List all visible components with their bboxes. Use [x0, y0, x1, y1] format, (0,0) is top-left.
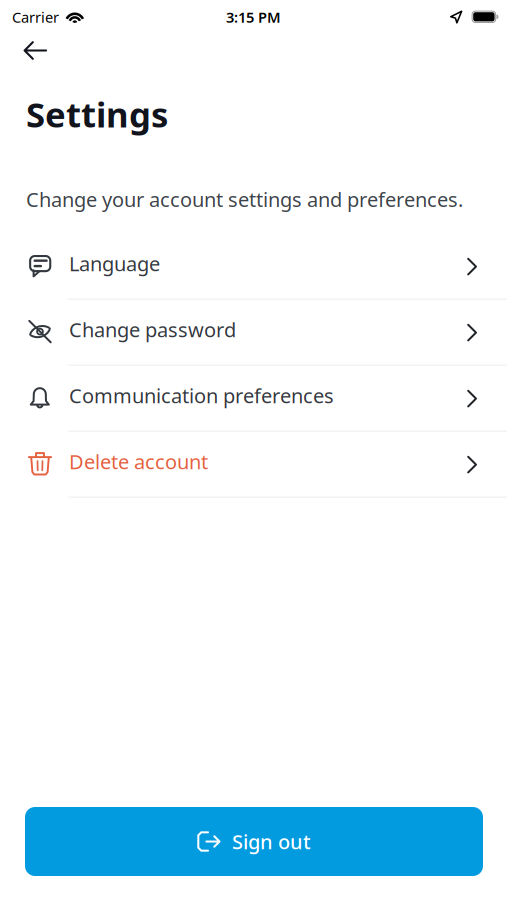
staticText: 3:15 PM	[226, 7, 281, 27]
staticText: Carrier	[12, 7, 59, 27]
button[interactable]: Communication preferences	[0, 366, 507, 432]
button[interactable]: Language	[0, 234, 507, 300]
staticText: Change your account settings and prefere…	[26, 186, 463, 213]
staticText: Language	[69, 250, 160, 277]
button[interactable]: Change password	[0, 300, 507, 366]
button[interactable]: Back	[0, 30, 65, 71]
button[interactable]: Sign out	[25, 807, 483, 876]
button[interactable]: Delete account	[0, 432, 507, 498]
staticText: Settings	[26, 91, 168, 137]
staticText: Communication preferences	[69, 382, 334, 409]
staticText: Delete account	[69, 448, 208, 475]
staticText: Change password	[69, 316, 236, 343]
staticText: Sign out	[232, 828, 311, 855]
